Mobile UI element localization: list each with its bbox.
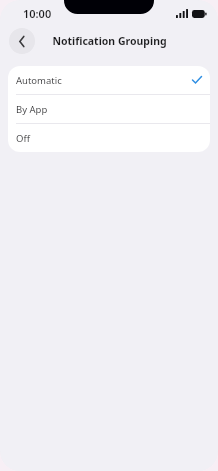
button[interactable]: Back xyxy=(9,28,35,54)
button[interactable]: Automatic xyxy=(8,66,210,94)
button[interactable]: By App xyxy=(8,95,210,123)
staticText: Off xyxy=(16,132,30,145)
staticText: Automatic xyxy=(16,74,62,87)
button[interactable]: Off xyxy=(8,124,210,152)
staticText: Notification Grouping xyxy=(52,34,167,48)
staticText: By App xyxy=(16,103,48,116)
staticText: 10:00 xyxy=(23,6,52,21)
